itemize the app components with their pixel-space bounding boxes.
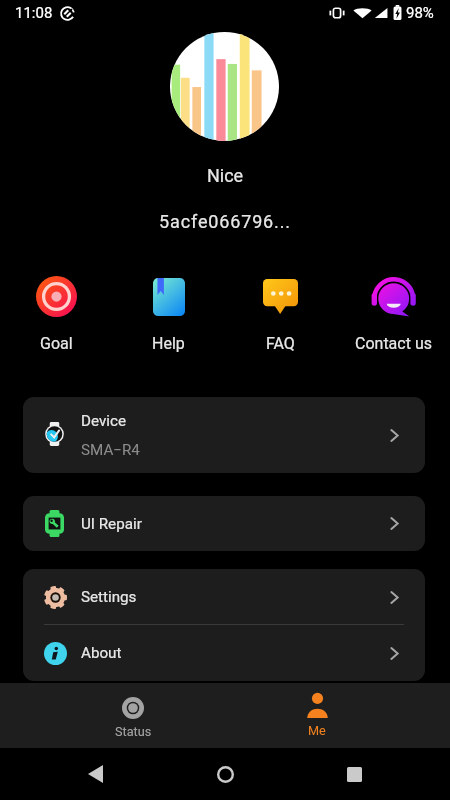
staticText: Device (81, 412, 126, 430)
staticText: Status (115, 724, 152, 739)
button[interactable]: Goal (0, 276, 112, 353)
staticText: Nice (0, 165, 450, 186)
staticText: About (81, 644, 122, 662)
staticText: UI Repair (81, 515, 142, 533)
other: Back (88, 765, 103, 783)
staticText: FAQ (266, 334, 295, 353)
staticText: Me (308, 723, 326, 738)
button[interactable]: FAQ (224, 276, 337, 353)
staticText: Goal (40, 334, 73, 353)
button[interactable]: UI Repair (23, 496, 425, 551)
button[interactable]: Me (225, 683, 409, 748)
staticText: SMA−R4 (81, 441, 140, 459)
button[interactable]: Help (112, 276, 224, 353)
staticText: 11:08 (15, 4, 53, 22)
button[interactable]: Status (41, 683, 225, 748)
button[interactable]: Device (23, 397, 425, 473)
staticText: Help (152, 334, 185, 353)
staticText: 98% (406, 4, 434, 22)
button[interactable]: Contact us (337, 276, 450, 353)
staticText: Settings (81, 588, 137, 606)
staticText: Contact us (355, 334, 432, 353)
other: Recent apps (347, 767, 362, 782)
button[interactable]: Profile picture (170, 32, 279, 141)
other: Home (217, 766, 234, 783)
button[interactable]: Settings (23, 569, 425, 625)
button[interactable]: About (23, 625, 425, 681)
staticText: 5acfe066796... (0, 211, 450, 232)
